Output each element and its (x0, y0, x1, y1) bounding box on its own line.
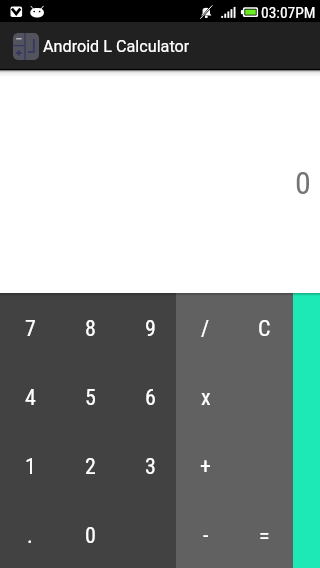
staticText: 3 (145, 454, 156, 480)
staticText: - (203, 523, 209, 549)
button[interactable]: + (180, 430, 231, 499)
button[interactable]: 4 (0, 361, 60, 430)
staticText: 5 (85, 385, 96, 411)
button[interactable]: - (180, 499, 231, 568)
button[interactable] (231, 430, 298, 499)
staticText: 1 (25, 454, 36, 480)
staticText: 03:07PM (261, 4, 316, 22)
button[interactable]: . (0, 499, 60, 568)
button[interactable]: 8 (60, 293, 120, 361)
button[interactable]: x (180, 361, 231, 430)
other: App icon (13, 33, 39, 60)
staticText: 9 (145, 316, 156, 342)
staticText: 4 (25, 385, 36, 411)
button[interactable]: 3 (120, 430, 180, 499)
staticText: = (259, 523, 270, 549)
button[interactable]: 5 (60, 361, 120, 430)
button[interactable]: C (231, 293, 298, 361)
staticText: + (200, 454, 211, 480)
button[interactable] (120, 499, 180, 568)
button[interactable]: Backspace (293, 293, 320, 568)
staticText: x (201, 385, 211, 411)
button[interactable] (231, 361, 298, 430)
button[interactable]: 6 (120, 361, 180, 430)
staticText: 7 (25, 316, 36, 342)
staticText: 6 (145, 385, 156, 411)
staticText: / (201, 316, 210, 342)
staticText: 8 (85, 316, 96, 342)
button[interactable]: = (231, 499, 298, 568)
staticText: 0 (295, 164, 311, 202)
staticText: . (27, 523, 33, 549)
button[interactable]: 0 (60, 499, 120, 568)
staticText: Android L Calculator (43, 37, 190, 56)
button[interactable]: / (180, 293, 231, 361)
button[interactable]: 9 (120, 293, 180, 361)
button[interactable]: 1 (0, 430, 60, 499)
staticText: 0 (85, 523, 96, 549)
button[interactable]: 7 (0, 293, 60, 361)
button[interactable]: 2 (60, 430, 120, 499)
staticText: C (258, 316, 271, 342)
staticText: 2 (85, 454, 96, 480)
